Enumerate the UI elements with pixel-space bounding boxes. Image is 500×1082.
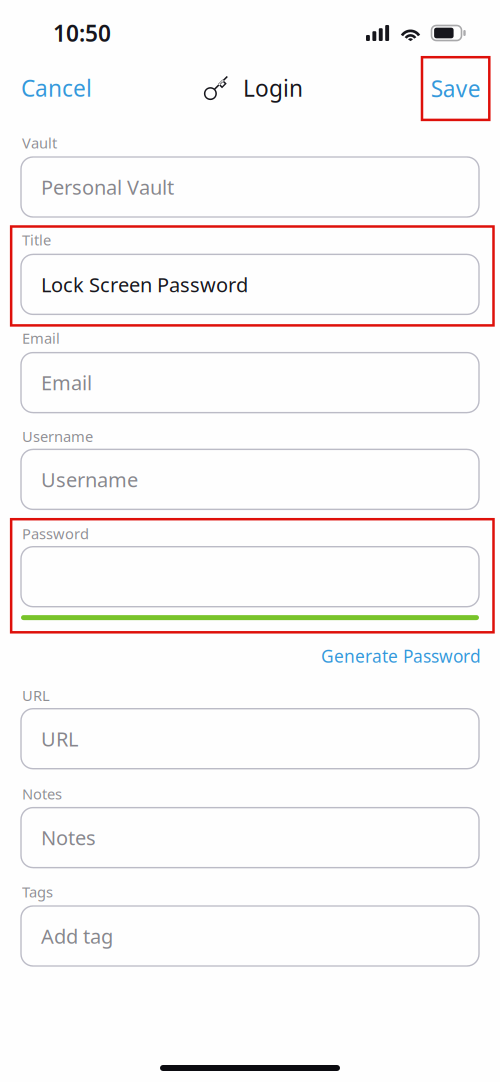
staticText: Title	[22, 230, 51, 250]
staticText: Notes	[22, 784, 62, 803]
staticText: Personal Vault	[41, 174, 174, 200]
staticText: URL	[41, 725, 78, 752]
button[interactable]: Personal Vault	[21, 157, 479, 217]
staticText: URL	[22, 686, 50, 705]
button[interactable]: Notes	[21, 808, 479, 868]
staticText: Tags	[22, 882, 53, 902]
staticText: Email	[41, 369, 92, 396]
button[interactable]: Save	[422, 57, 489, 120]
staticText: Lock Screen Password	[41, 271, 248, 298]
button[interactable]: Generate Password	[321, 644, 481, 667]
button[interactable]: Add tag	[21, 906, 479, 966]
button[interactable]: URL	[21, 709, 479, 769]
staticText: Password	[22, 524, 89, 543]
staticText: Username	[41, 466, 138, 493]
staticText: Save	[431, 73, 481, 104]
staticText: Cancel	[21, 73, 92, 103]
staticText: Email	[22, 328, 60, 348]
staticText: 10:50	[53, 18, 111, 48]
button[interactable]: Cancel	[21, 72, 101, 104]
button[interactable]: Username	[21, 449, 479, 509]
staticText: Add tag	[41, 923, 113, 949]
staticText: Notes	[41, 824, 96, 851]
button[interactable]	[21, 547, 479, 607]
staticText: Username	[22, 427, 93, 446]
button[interactable]: Email	[21, 353, 479, 413]
staticText: Login	[243, 73, 303, 103]
staticText: Vault	[22, 133, 57, 153]
staticText: Generate Password	[321, 644, 481, 667]
button[interactable]: Lock Screen Password	[21, 254, 479, 314]
